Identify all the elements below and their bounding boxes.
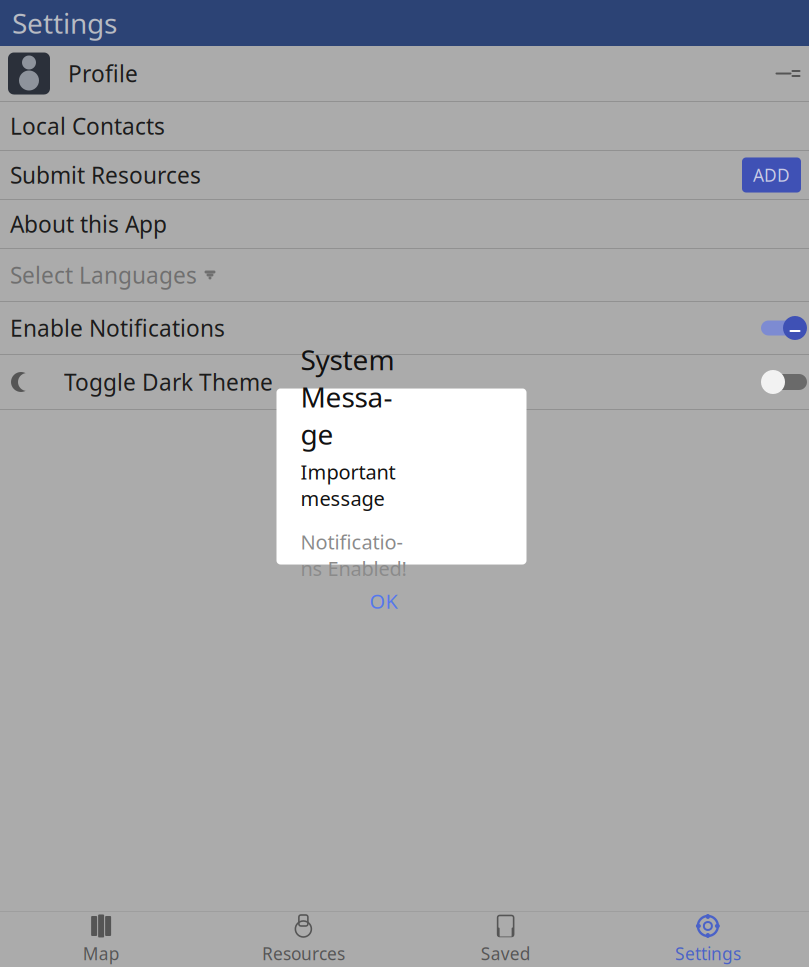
staticText: Profile [68,58,138,88]
button[interactable]: OK [359,582,407,620]
staticText: Resources [262,942,345,965]
button[interactable]: Resources [202,912,404,967]
staticText: ADD [753,163,790,186]
button[interactable]: Saved [404,912,607,967]
staticText: Settings [675,942,741,965]
button[interactable]: About this App [0,200,809,248]
button[interactable]: Enable Notifications [0,302,809,354]
staticText: Enable Notifications [10,313,225,343]
staticText: Important message [300,458,395,511]
staticText: About this App [10,209,167,239]
button[interactable]: Map [0,912,202,967]
staticText: OK [369,588,397,614]
button[interactable]: Local Contacts [0,102,809,150]
staticText: Local Contacts [10,111,165,141]
staticText: System Message [300,341,394,452]
staticText: Map [83,942,120,965]
button[interactable]: Profile [0,46,809,101]
staticText: Toggle Dark Theme [64,367,273,397]
staticText: Submit Resources [10,160,201,190]
staticText: Saved [481,942,531,965]
staticText: Select Languages [10,260,197,290]
staticText: Settings [12,4,117,42]
button[interactable]: ADD [742,157,801,192]
staticText: Notifications Enabled! [300,528,406,582]
button[interactable]: Select Languages [0,249,809,301]
button[interactable]: Toggle Dark Theme [0,355,809,409]
button[interactable]: Settings [607,912,809,967]
